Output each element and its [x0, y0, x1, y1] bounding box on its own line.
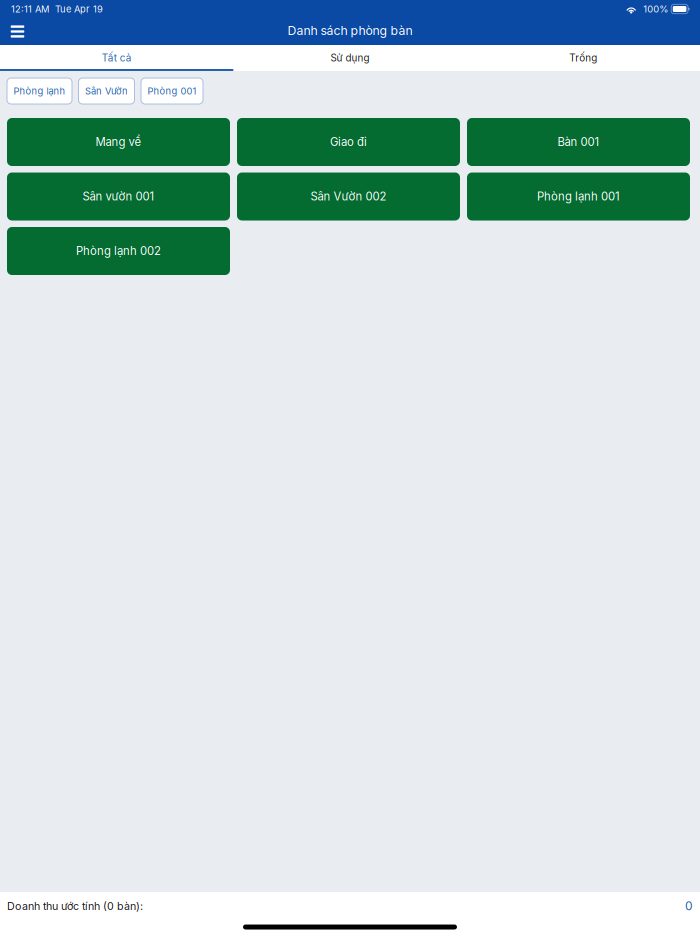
button[interactable]: Phòng 001 [141, 78, 203, 104]
staticText: Bàn 001 [557, 135, 599, 149]
staticText: Sân vườn 001 [82, 190, 154, 203]
staticText: Danh sách phòng bàn [287, 23, 412, 38]
staticText: Tất cả [102, 52, 132, 64]
button[interactable]: Sân Vườn [78, 78, 134, 104]
staticText: Phòng lạnh [13, 85, 65, 97]
button[interactable]: Phòng lạnh 002 [7, 227, 230, 275]
staticText: Phòng 001 [147, 85, 196, 97]
button[interactable]: Giao đi [237, 118, 460, 166]
staticText: Trống [569, 52, 597, 64]
button[interactable]: Trống [467, 45, 700, 71]
button[interactable]: Menu [2, 19, 33, 43]
staticText: 100% [637, 3, 671, 15]
staticText: Mang về [95, 135, 141, 149]
staticText: Sân Vườn [85, 85, 128, 97]
button[interactable]: Sân Vườn 002 [237, 172, 460, 220]
staticText: Giao đi [330, 135, 367, 149]
button[interactable]: Phòng lạnh [7, 78, 72, 104]
button[interactable]: Sân vườn 001 [7, 172, 230, 220]
staticText: Phòng lạnh 002 [76, 244, 161, 258]
staticText: 0 [685, 899, 693, 913]
button[interactable]: Bàn 001 [467, 118, 690, 166]
button[interactable]: Tất cả [0, 45, 233, 71]
staticText: Sử dụng [330, 52, 369, 64]
button[interactable]: Sử dụng [233, 45, 467, 71]
button[interactable]: Mang về [7, 118, 230, 166]
staticText: Doanh thu ước tính (0 bàn): [7, 899, 143, 912]
button[interactable]: Phòng lạnh 001 [467, 172, 690, 220]
staticText: Phòng lạnh 001 [537, 190, 620, 203]
staticText: 12:11 AM Tue Apr 19 [11, 3, 103, 15]
staticText: Sân Vườn 002 [310, 190, 386, 203]
